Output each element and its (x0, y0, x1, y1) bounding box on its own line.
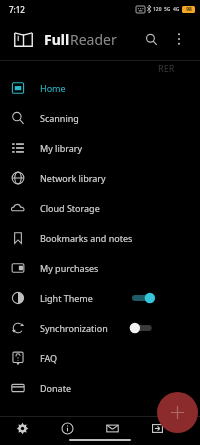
staticText: 7:12 (9, 4, 25, 15)
button[interactable]: Cloud Storage (0, 193, 200, 223)
staticText: 120 (153, 6, 162, 13)
staticText: Reader (70, 30, 117, 49)
staticText: My library (40, 142, 200, 154)
staticText: Bookmarks and notes (40, 232, 200, 244)
button[interactable]: Login (135, 417, 180, 445)
button[interactable]: Home (0, 73, 200, 103)
staticText: My purchases (40, 262, 200, 274)
button[interactable]: Toggle on (132, 291, 156, 305)
button[interactable]: Open navigation drawer (10, 26, 36, 52)
staticText: Full (44, 30, 70, 49)
staticText: 5G (164, 6, 171, 13)
button[interactable]: Mail (90, 417, 135, 445)
button[interactable]: About (45, 417, 90, 445)
staticText: Cloud Storage (40, 202, 200, 214)
staticText: Network library (40, 172, 200, 184)
button[interactable]: Toggle off (132, 321, 156, 335)
staticText: FAQ (40, 352, 200, 364)
staticText: Donate (40, 382, 200, 394)
button[interactable]: FAQ (0, 343, 200, 373)
button[interactable]: Synchronization (0, 313, 200, 343)
button[interactable]: Add (157, 392, 198, 433)
button[interactable]: Settings (0, 417, 45, 445)
button[interactable]: Donate (0, 373, 200, 403)
button[interactable]: My library (0, 133, 200, 163)
button[interactable]: My purchases (0, 253, 200, 283)
staticText: Synchronization (40, 322, 132, 334)
staticText: 4G (173, 6, 180, 13)
staticText: Home (40, 82, 200, 94)
staticText: Light Theme (40, 292, 132, 304)
button[interactable]: More options (166, 26, 192, 52)
button[interactable]: Bookmarks and notes (0, 223, 200, 253)
button[interactable]: Search (138, 26, 164, 52)
button[interactable]: Light Theme (0, 283, 200, 313)
button[interactable]: Network library (0, 163, 200, 193)
button[interactable]: Scanning (0, 103, 200, 133)
staticText: 98 (186, 6, 192, 13)
staticText: Scanning (40, 112, 200, 124)
staticText: RER (158, 62, 175, 74)
